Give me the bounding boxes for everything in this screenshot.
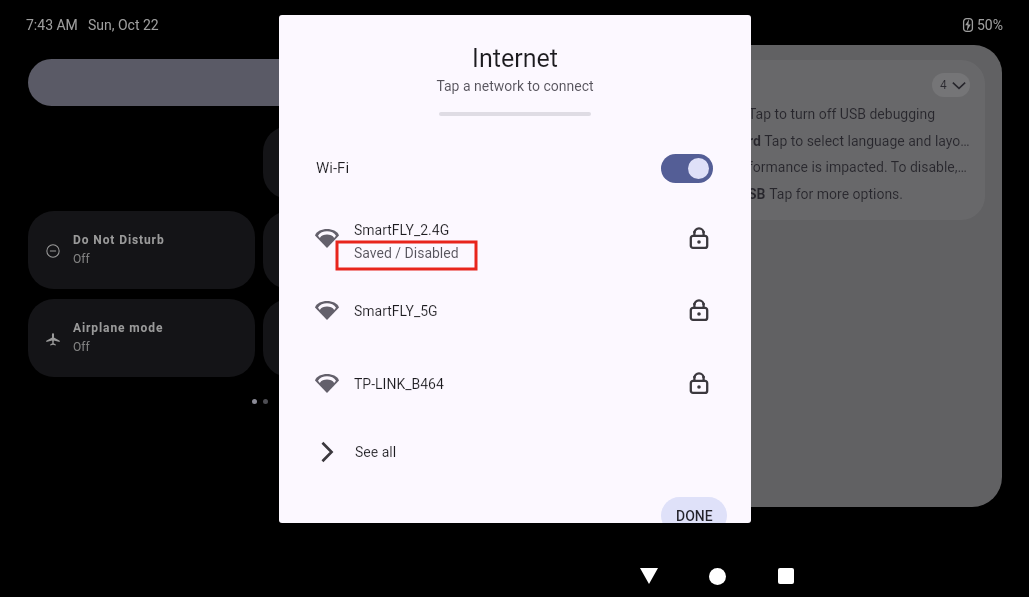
- button[interactable]: Auto-rotate: [263, 299, 490, 377]
- button[interactable]: Notifications: [704, 60, 985, 220]
- button[interactable]: Brightness: [28, 59, 358, 106]
- button[interactable]: Flashlight: [263, 211, 490, 289]
- staticText: Internet: [279, 44, 751, 73]
- staticText: Tap for more options.: [766, 186, 904, 202]
- staticText: Do Not Disturb: [73, 233, 165, 247]
- button[interactable]: See all: [279, 424, 751, 480]
- staticText: 4: [940, 78, 947, 92]
- staticText: Wi-Fi: [316, 159, 350, 177]
- button[interactable]: SmartFLY_5G: [279, 282, 751, 338]
- button[interactable]: Recent apps: [762, 552, 810, 597]
- staticText: SB: [748, 186, 766, 202]
- button[interactable]: TP-LINK_B464: [279, 355, 751, 411]
- staticText: Off: [73, 340, 90, 354]
- staticText: Airplane mode: [73, 321, 164, 335]
- staticText: Tap a network to connect: [279, 78, 751, 94]
- button[interactable]: SmartFLY_2.4G: [279, 210, 751, 266]
- staticText: Sun, Oct 22: [88, 17, 159, 33]
- staticText: Tap to select language and layo…: [761, 133, 970, 149]
- button[interactable]: Home: [693, 552, 741, 597]
- staticText: TP-LINK_B464: [354, 376, 444, 392]
- staticText: formance is impacted. To disable,…: [748, 159, 967, 175]
- staticText: SmartFLY_5G: [354, 303, 438, 319]
- button[interactable]: Wi-Fi: [279, 140, 751, 196]
- staticText: DONE: [676, 508, 713, 523]
- staticText: 50%: [977, 17, 1003, 33]
- button[interactable]: Do Not Disturb: [28, 211, 255, 289]
- button[interactable]: Back: [625, 552, 673, 597]
- button[interactable]: Expand notifications: [932, 73, 970, 97]
- staticText: Tap to turn off USB debugging: [748, 106, 936, 122]
- staticText: Off: [73, 252, 90, 266]
- staticText: See all: [355, 444, 397, 460]
- staticText: Saved / Disabled: [354, 245, 459, 261]
- button[interactable]: DONE: [661, 497, 727, 523]
- button[interactable]: Internet: [263, 126, 490, 199]
- staticText: SmartFLY_2.4G: [354, 222, 450, 238]
- staticText: rd: [748, 133, 761, 149]
- staticText: 7:43 AM: [26, 17, 78, 33]
- button[interactable]: Airplane mode: [28, 299, 255, 377]
